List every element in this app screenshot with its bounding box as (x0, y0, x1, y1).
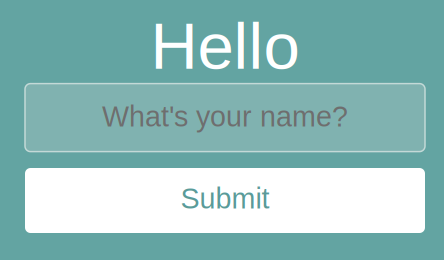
button[interactable]: Submit (25, 168, 425, 233)
staticText: What's your name? (102, 101, 348, 133)
staticText: Hello (150, 9, 299, 82)
button[interactable]: What's your name? (25, 84, 425, 152)
staticText: Submit (180, 182, 269, 214)
